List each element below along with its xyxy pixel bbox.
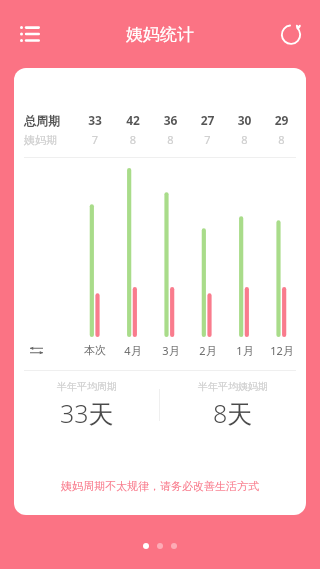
button[interactable]: 2月	[189, 339, 226, 361]
staticText: 7	[76, 132, 114, 147]
button[interactable]: 半年平均姨妈期	[160, 371, 306, 439]
button[interactable]: Switch chart	[24, 339, 76, 361]
staticText: 8	[114, 132, 152, 147]
button[interactable]: 本次	[76, 339, 114, 361]
button[interactable]: 1月	[226, 339, 263, 361]
button[interactable]: 半年平均周期	[14, 371, 159, 439]
staticText: 36	[152, 112, 189, 128]
staticText: 8	[263, 132, 300, 147]
staticText: 33天	[60, 396, 114, 430]
staticText: 30	[226, 112, 263, 128]
staticText: 姨妈统计	[126, 24, 194, 45]
button[interactable]: 4月	[114, 339, 152, 361]
staticText: 姨妈周期不太规律，请务必改善生活方式	[14, 479, 306, 493]
staticText: 1月	[236, 343, 254, 358]
staticText: 本次	[84, 343, 106, 357]
staticText: 8	[226, 132, 263, 147]
staticText: 姨妈期	[24, 133, 76, 147]
button[interactable]: Refresh	[272, 15, 310, 53]
staticText: 半年平均周期	[57, 380, 117, 393]
staticText: 29	[263, 112, 300, 128]
staticText: 2月	[199, 343, 217, 358]
staticText: 半年平均姨妈期	[198, 380, 268, 393]
button[interactable]: 3月	[152, 339, 189, 361]
staticText: 4月	[124, 343, 142, 358]
staticText: 总周期	[24, 113, 76, 128]
staticText: 3月	[162, 343, 180, 358]
staticText: 27	[189, 112, 226, 128]
staticText: 12月	[270, 343, 294, 358]
staticText: 8	[152, 132, 189, 147]
staticText: 42	[114, 112, 152, 128]
staticText: 33	[76, 112, 114, 128]
staticText: 8天	[213, 396, 253, 430]
button[interactable]: Menu	[12, 16, 48, 52]
staticText: 7	[189, 132, 226, 147]
button[interactable]: 12月	[263, 339, 300, 361]
